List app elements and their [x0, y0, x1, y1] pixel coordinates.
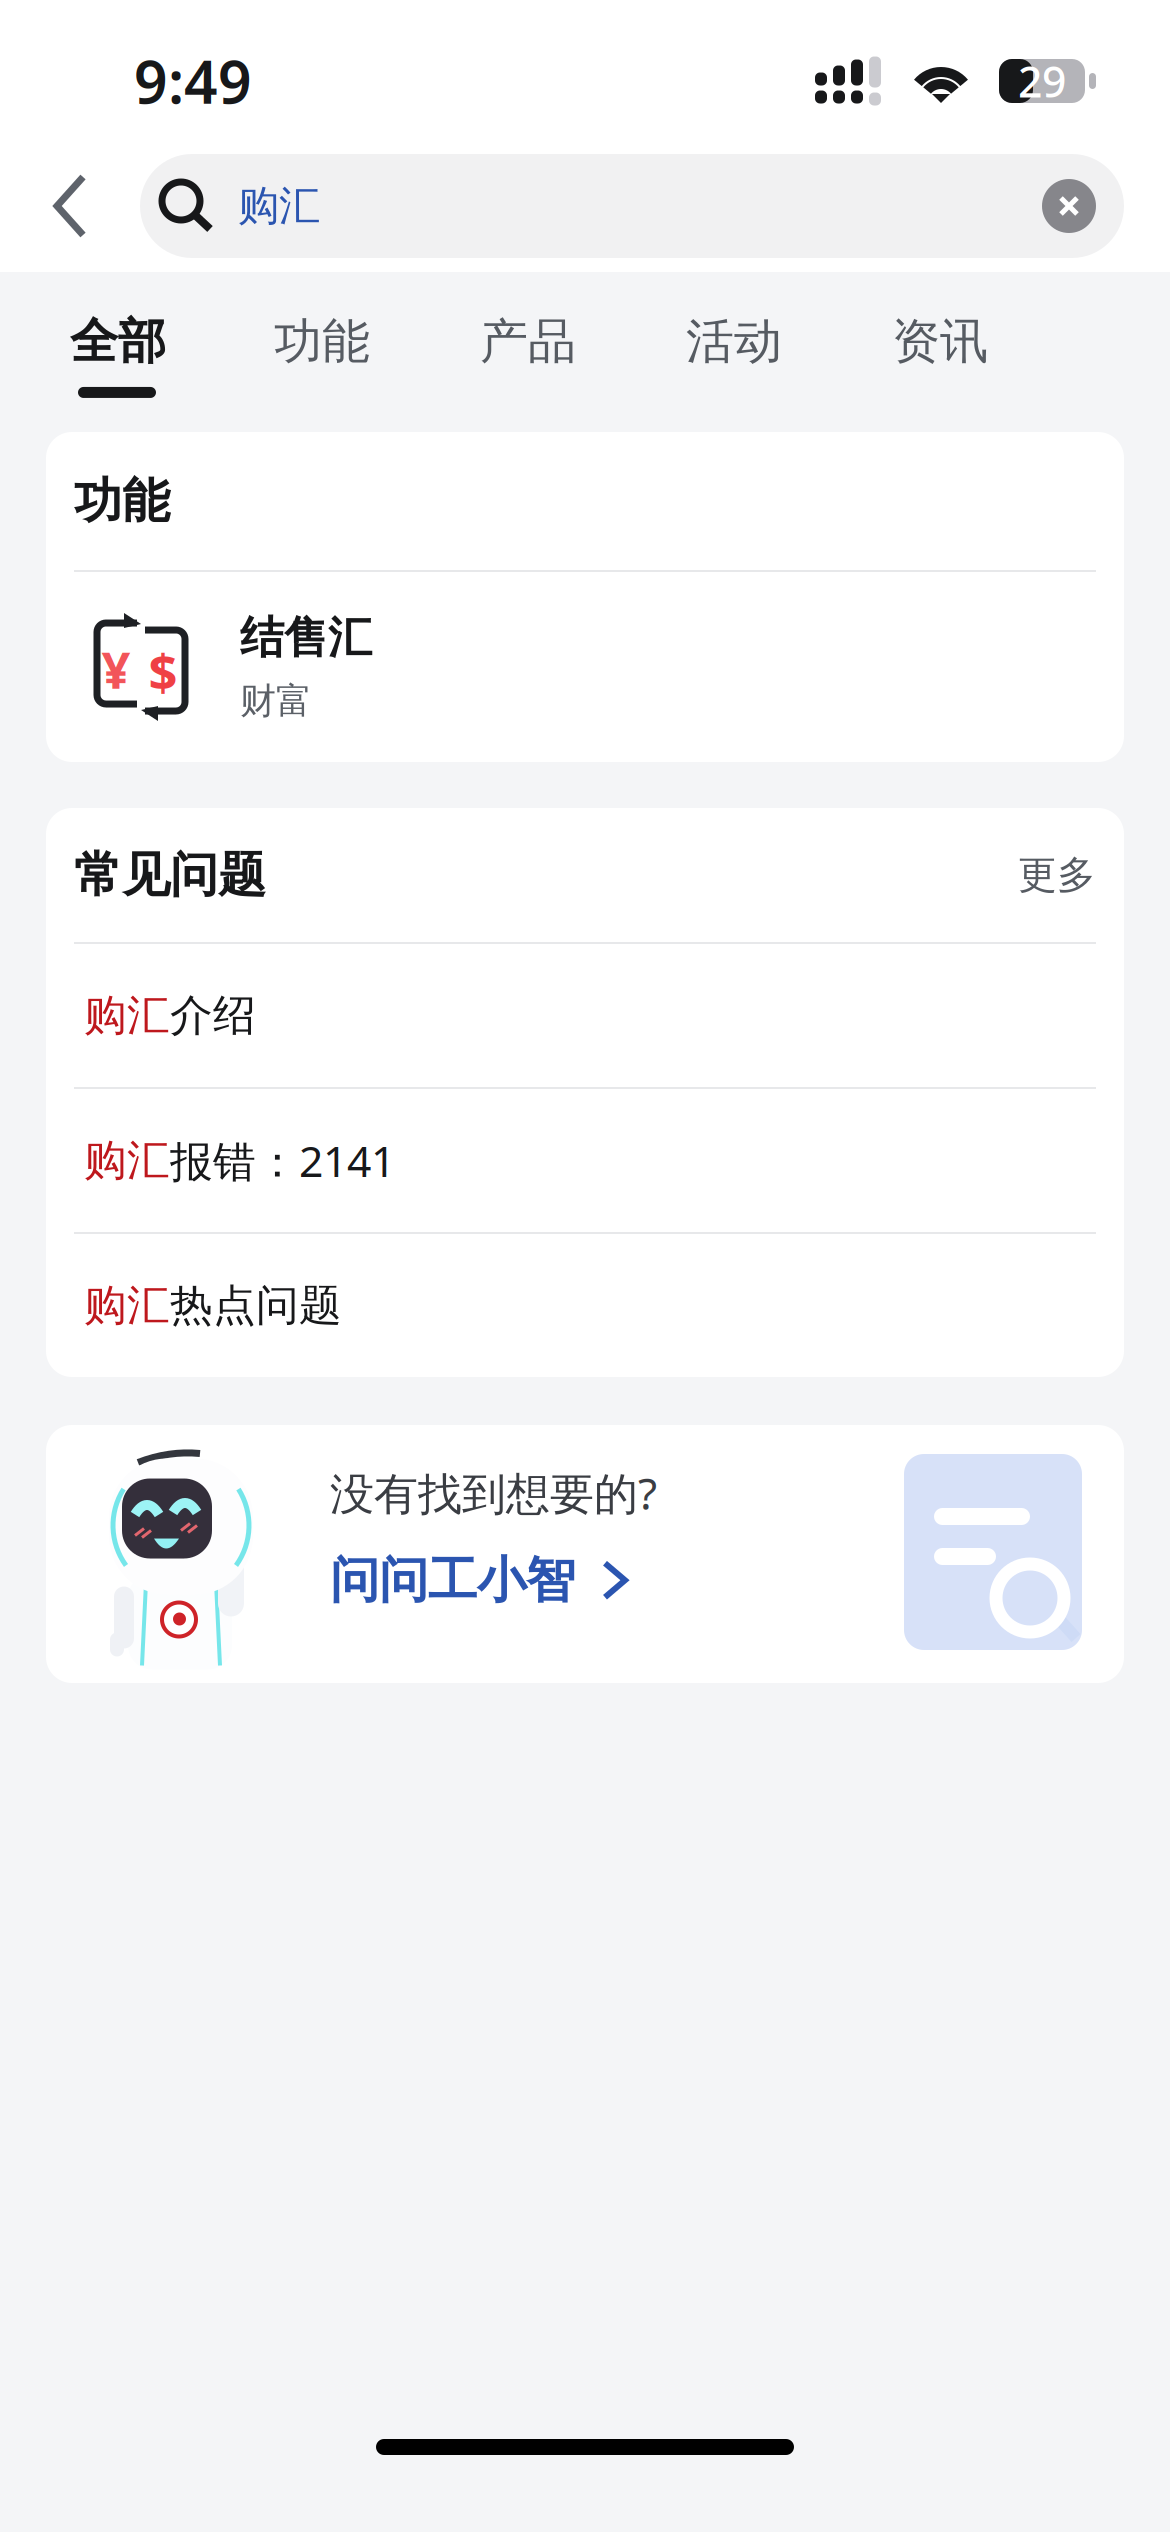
staticText: 29: [1018, 53, 1066, 109]
staticText: 全部: [70, 312, 166, 371]
staticText: 购汇: [84, 1134, 170, 1187]
staticText: 购汇: [84, 1279, 170, 1332]
staticText: 更多: [1018, 851, 1096, 899]
button[interactable]: 购汇: [46, 1089, 1124, 1232]
staticText: 结售汇: [240, 611, 372, 665]
staticText: 介绍: [170, 989, 256, 1042]
staticText: 财富: [240, 679, 312, 723]
button[interactable]: Clear search: [1032, 169, 1106, 243]
staticText: 购汇: [238, 181, 320, 231]
button[interactable]: 产品: [480, 272, 576, 432]
button[interactable]: 没有找到想要的?: [0, 1425, 1170, 1683]
button[interactable]: 购汇: [46, 1234, 1124, 1377]
staticText: 9:49: [134, 42, 252, 120]
button[interactable]: 功能: [274, 272, 370, 432]
button[interactable]: 购汇: [46, 944, 1124, 1087]
staticText: 购汇: [84, 989, 170, 1042]
staticText: 功能: [74, 471, 170, 530]
staticText: 资讯: [892, 312, 988, 371]
staticText: 热点问题: [170, 1279, 342, 1332]
staticText: 功能: [274, 312, 370, 371]
button[interactable]: 更多: [1018, 851, 1096, 899]
button[interactable]: 活动: [686, 272, 782, 432]
button[interactable]: ¥: [46, 572, 1124, 762]
staticText: $: [148, 637, 177, 705]
staticText: 问问工小智: [330, 1550, 575, 1610]
button[interactable]: 资讯: [892, 272, 988, 432]
staticText: ¥: [101, 635, 130, 703]
staticText: 没有找到想要的?: [330, 1463, 657, 1522]
staticText: 产品: [480, 312, 576, 371]
button[interactable]: Back: [0, 135, 140, 277]
button[interactable]: 全部: [70, 272, 166, 432]
staticText: 报错：2141: [170, 1132, 395, 1189]
staticText: 活动: [686, 312, 782, 371]
staticText: 常见问题: [74, 845, 266, 904]
